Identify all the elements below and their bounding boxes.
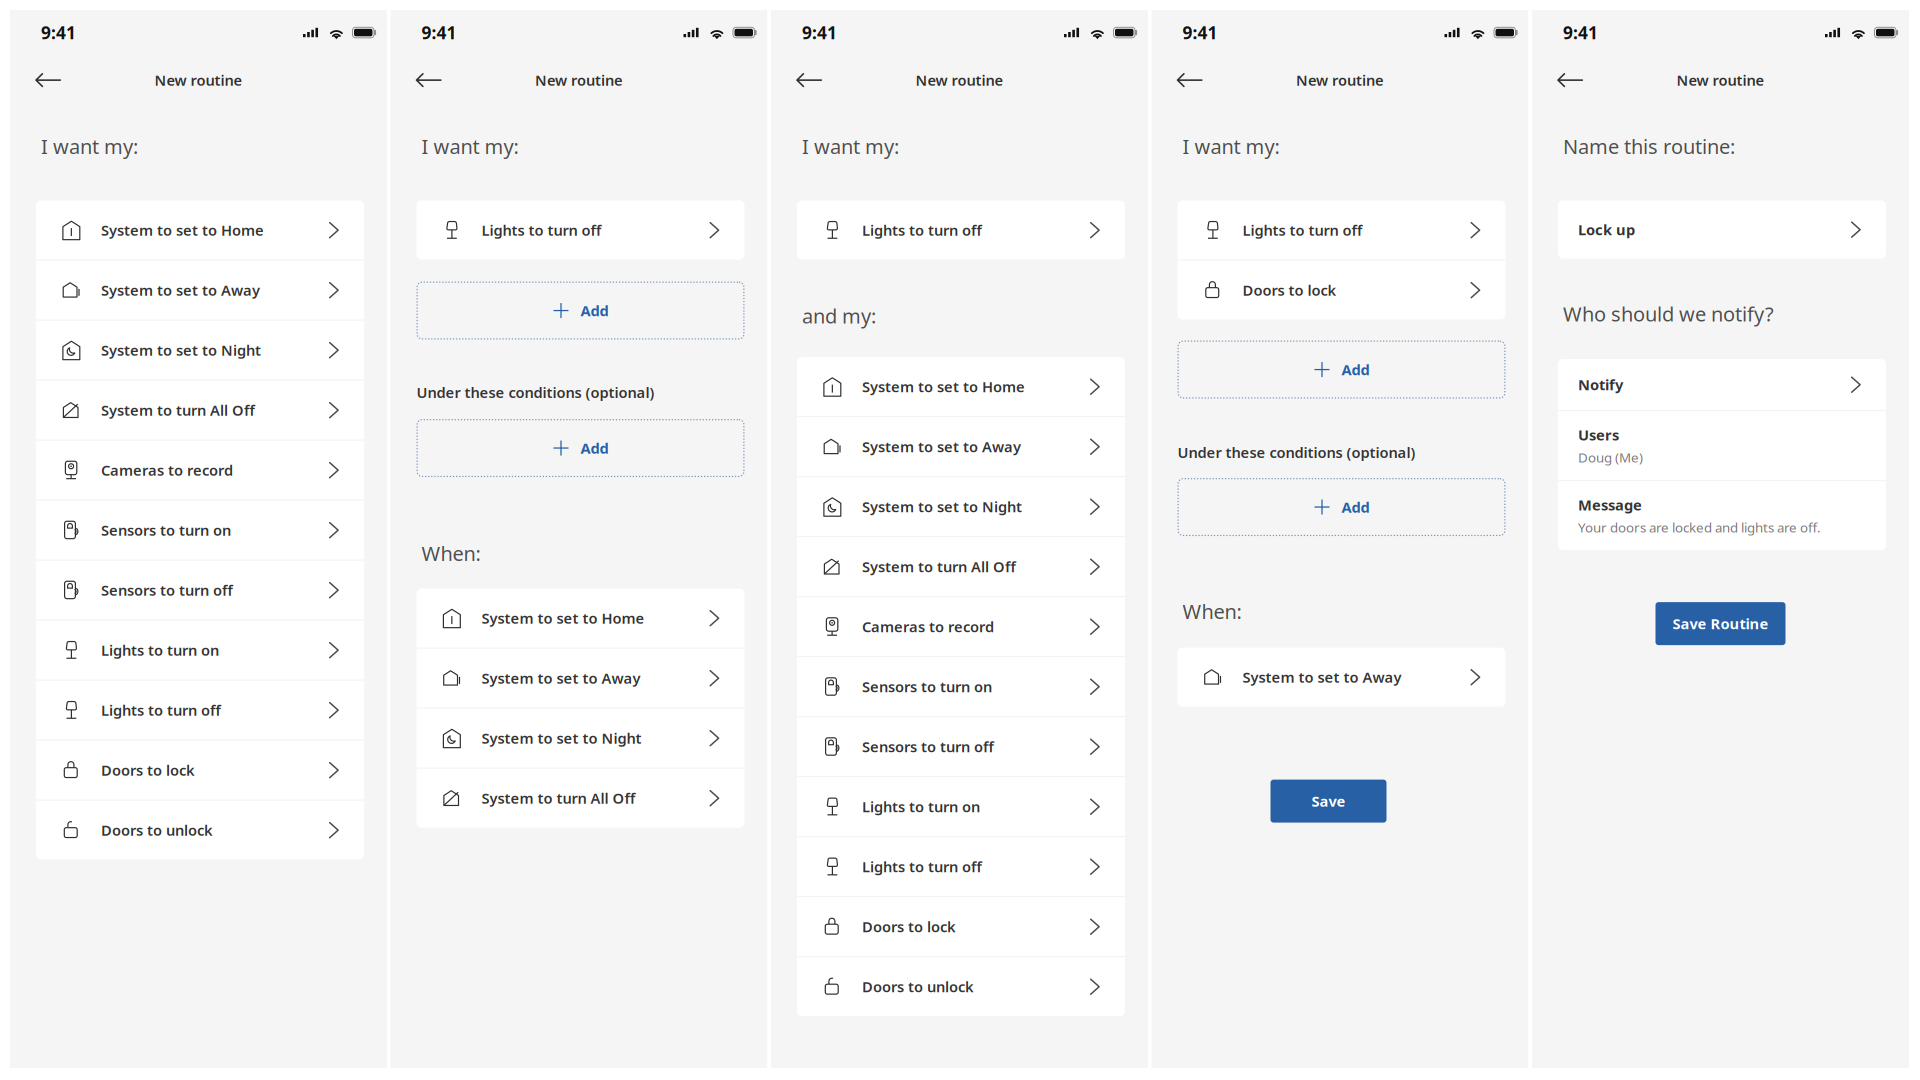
staticText: Lights to turn off — [1242, 220, 1362, 240]
staticText: Lights to turn on — [862, 797, 980, 816]
staticText: Cameras to record — [101, 460, 233, 480]
button[interactable]: System to set to Home — [416, 589, 744, 649]
staticText: New routine — [1676, 70, 1764, 90]
button[interactable]: Lights to turn off — [36, 681, 364, 741]
staticText: and my: — [802, 303, 876, 329]
staticText: Name this routine: — [1563, 133, 1735, 160]
staticText: Sensors to turn off — [101, 580, 233, 600]
staticText: Lights to turn off — [101, 700, 221, 720]
staticText: Lights to turn off — [862, 220, 982, 240]
button[interactable]: System to turn All Off — [797, 537, 1125, 597]
staticText: Cameras to record — [862, 617, 994, 636]
staticText: 9:41 — [1182, 21, 1217, 44]
button[interactable]: System to set to Away — [797, 417, 1125, 477]
staticText: Message — [1578, 495, 1642, 514]
staticText: Sensors to turn on — [101, 520, 231, 540]
staticText: New routine — [535, 70, 623, 90]
staticText: Doors to lock — [101, 760, 195, 780]
button[interactable]: Back — [1176, 65, 1203, 95]
staticText: Your doors are locked and lights are off… — [1578, 518, 1821, 536]
button[interactable]: Doors to unlock — [797, 957, 1125, 1016]
button[interactable]: Cameras to record — [36, 441, 364, 501]
staticText: Add — [1341, 497, 1369, 517]
staticText: Doors to lock — [862, 917, 956, 936]
button[interactable]: Users — [1558, 411, 1886, 481]
button[interactable]: Doors to lock — [36, 741, 364, 801]
button[interactable]: Notify — [1558, 359, 1886, 411]
button[interactable]: Save — [1270, 780, 1386, 823]
button[interactable]: System to set to Away — [36, 261, 364, 321]
button[interactable]: Add — [1151, 478, 1528, 536]
staticText: Sensors to turn on — [862, 677, 992, 696]
staticText: Doors to unlock — [101, 820, 213, 840]
staticText: Save Routine — [1672, 614, 1768, 633]
staticText: New routine — [1296, 70, 1384, 90]
button[interactable]: System to set to Away — [1177, 648, 1505, 707]
button[interactable]: Doors to lock — [1177, 261, 1505, 320]
staticText: System to set to Night — [101, 340, 261, 360]
button[interactable]: Cameras to record — [797, 597, 1125, 657]
button[interactable]: Sensors to turn on — [36, 501, 364, 561]
button[interactable]: Lights to turn off — [797, 201, 1125, 260]
staticText: 9:41 — [421, 21, 456, 44]
button[interactable]: Sensors to turn off — [797, 717, 1125, 777]
staticText: Notify — [1578, 375, 1623, 394]
staticText: Lights to turn off — [481, 220, 601, 240]
staticText: System to set to Away — [481, 668, 640, 688]
button[interactable]: System to turn All Off — [36, 381, 364, 441]
button[interactable]: Back — [415, 65, 442, 95]
button[interactable]: Lights to turn off — [797, 837, 1125, 897]
staticText: Lock up — [1578, 220, 1635, 239]
button[interactable]: Add — [390, 419, 767, 477]
staticText: New routine — [915, 70, 1003, 90]
button[interactable]: System to turn All Off — [416, 769, 744, 828]
button[interactable]: Lights to turn off — [416, 201, 744, 260]
button[interactable]: Save Routine — [1655, 602, 1785, 645]
staticText: Add — [1341, 360, 1369, 379]
button[interactable]: Lights to turn on — [36, 621, 364, 681]
button[interactable]: Back — [35, 65, 62, 95]
button[interactable]: Sensors to turn off — [36, 561, 364, 621]
button[interactable]: System to set to Night — [797, 477, 1125, 537]
staticText: System to set to Away — [1242, 667, 1401, 687]
button[interactable]: Sensors to turn on — [797, 657, 1125, 717]
button[interactable]: System to set to Night — [416, 709, 744, 769]
button[interactable]: Lights to turn off — [1177, 201, 1505, 261]
staticText: Save — [1311, 791, 1345, 811]
staticText: 9:41 — [802, 21, 837, 44]
button[interactable]: System to set to Night — [36, 321, 364, 381]
staticText: New routine — [154, 70, 242, 90]
button[interactable]: Add — [390, 282, 767, 340]
staticText: System to set to Home — [101, 220, 264, 240]
button[interactable]: System to set to Home — [36, 201, 364, 261]
staticText: Sensors to turn off — [862, 737, 994, 756]
staticText: I want my: — [802, 133, 899, 160]
staticText: Who should we notify? — [1563, 301, 1774, 327]
staticText: System to turn All Off — [481, 788, 635, 808]
staticText: System to set to Night — [481, 728, 641, 748]
button[interactable]: Add — [1151, 341, 1528, 399]
staticText: System to set to Night — [862, 497, 1022, 516]
staticText: I want my: — [41, 133, 138, 160]
staticText: Under these conditions (optional) — [416, 383, 654, 402]
staticText: Doors to lock — [1242, 280, 1336, 300]
button[interactable]: Message — [1558, 481, 1886, 550]
staticText: System to set to Home — [481, 608, 644, 628]
staticText: I want my: — [1182, 133, 1279, 160]
button[interactable]: Back — [796, 65, 823, 95]
button[interactable]: Doors to lock — [797, 897, 1125, 957]
staticText: System to set to Away — [101, 280, 260, 300]
button[interactable]: System to set to Home — [797, 357, 1125, 417]
button[interactable]: Doors to unlock — [36, 801, 364, 860]
staticText: Doors to unlock — [862, 977, 974, 996]
staticText: Doug (Me) — [1578, 448, 1643, 466]
button[interactable]: Lights to turn on — [797, 777, 1125, 837]
button[interactable]: System to set to Away — [416, 649, 744, 709]
staticText: 9:41 — [1563, 21, 1598, 44]
staticText: When: — [1182, 598, 1241, 625]
button[interactable]: Lock up — [1558, 201, 1886, 259]
staticText: System to set to Away — [862, 437, 1021, 456]
staticText: Add — [580, 301, 608, 320]
staticText: I want my: — [421, 133, 518, 160]
button[interactable]: Back — [1557, 65, 1584, 95]
